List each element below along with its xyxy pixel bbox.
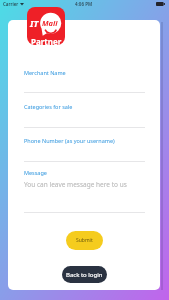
staticText: 4:06 PM — [75, 1, 93, 7]
other: Battery — [156, 2, 165, 6]
button[interactable] — [24, 62, 145, 92]
staticText: Back to login — [66, 271, 103, 279]
button[interactable] — [24, 132, 145, 161]
staticText: Message — [24, 169, 47, 176]
staticText: You can leave message here to us — [24, 180, 127, 189]
staticText: Submit — [76, 237, 93, 244]
staticText: IT — [30, 17, 39, 29]
staticText: Mall — [42, 18, 58, 28]
button[interactable]: Submit — [66, 231, 103, 250]
staticText: Phone Number (as your username) — [24, 137, 115, 144]
staticText: Merchant Name — [24, 69, 66, 76]
staticText: Partner — [31, 36, 62, 45]
staticText: Carrier — [3, 1, 19, 7]
button[interactable] — [24, 166, 145, 211]
button[interactable]: Back to login — [62, 266, 107, 283]
staticText: Categories for sale — [24, 103, 73, 110]
button[interactable] — [24, 97, 145, 127]
